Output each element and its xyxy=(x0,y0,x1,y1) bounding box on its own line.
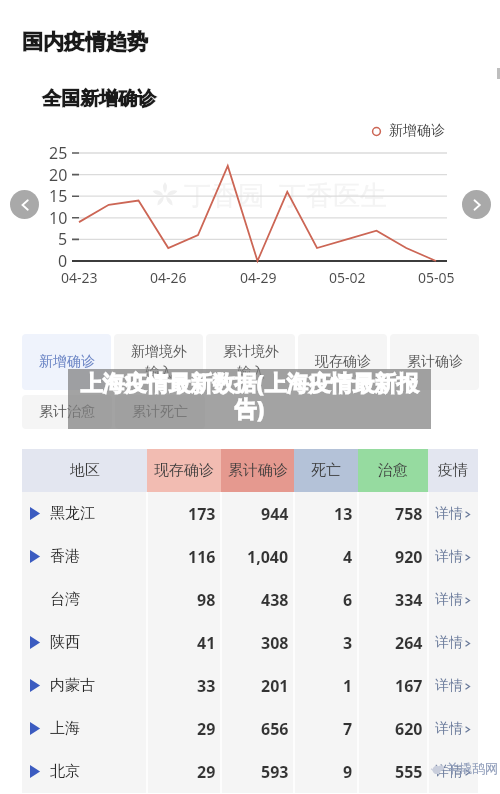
staticText: 593 xyxy=(261,761,289,783)
staticText: 疫情 xyxy=(438,461,468,480)
staticText: 920 xyxy=(395,546,423,568)
button[interactable]: 累计确诊 xyxy=(221,449,294,492)
staticText: 香港 xyxy=(50,547,80,566)
button[interactable]: 新增确诊 xyxy=(22,334,111,390)
staticText: 详情 xyxy=(435,763,463,781)
button[interactable]: 疫情 xyxy=(428,449,478,492)
staticText: 201 xyxy=(261,675,289,697)
staticText: 陕西 xyxy=(50,633,80,652)
staticText: 656 xyxy=(261,718,289,740)
staticText: 地区 xyxy=(70,461,100,480)
staticText: 25 xyxy=(49,142,68,164)
staticText: 555 xyxy=(395,761,423,783)
staticText: 05-02 xyxy=(329,268,366,287)
staticText: 334 xyxy=(395,589,423,611)
button[interactable]: 治愈 xyxy=(358,449,428,492)
staticText: 详情 xyxy=(435,634,463,652)
staticText: 台湾 xyxy=(50,590,80,609)
staticText: 治愈 xyxy=(378,461,408,480)
staticText: 4 xyxy=(343,546,353,568)
staticText: 3 xyxy=(343,632,353,654)
staticText: 04-26 xyxy=(150,268,187,287)
staticText: 详情 xyxy=(435,548,463,566)
button[interactable]: 内蒙古 xyxy=(22,664,478,707)
button[interactable]: 北京 xyxy=(22,750,478,793)
staticText: 10 xyxy=(49,207,68,229)
staticText: 累计境外 输入 xyxy=(223,343,279,381)
staticText: 全国新增确诊 xyxy=(42,87,156,111)
staticText: 7 xyxy=(343,718,353,740)
staticText: 05-05 xyxy=(418,268,455,287)
staticText: 308 xyxy=(261,632,289,654)
staticText: 944 xyxy=(261,503,289,525)
staticText: 438 xyxy=(261,589,289,611)
staticText: 黑龙江 xyxy=(50,504,95,523)
button[interactable]: 香港 xyxy=(22,535,478,578)
button[interactable]: 现存确诊 xyxy=(298,334,387,390)
staticText: 98 xyxy=(197,589,216,611)
staticText: 详情 xyxy=(435,591,463,609)
staticText: 累计治愈 xyxy=(39,403,95,421)
staticText: 上海 xyxy=(50,719,80,738)
staticText: 620 xyxy=(395,718,423,740)
staticText: 13 xyxy=(334,503,353,525)
button[interactable]: 累计境外 输入 xyxy=(206,334,295,390)
staticText: 04-23 xyxy=(61,268,98,287)
staticText: 04-29 xyxy=(240,268,277,287)
button[interactable]: 累计死亡 xyxy=(115,395,205,429)
button[interactable]: 累计治愈 xyxy=(22,395,112,429)
staticText: 新增确诊 xyxy=(389,122,445,140)
button[interactable]: 上海 xyxy=(22,707,478,750)
staticText: 死亡 xyxy=(311,461,341,480)
staticText: 累计确诊 xyxy=(407,353,463,371)
staticText: 264 xyxy=(395,632,423,654)
staticText: 现存确诊 xyxy=(154,461,214,480)
staticText: 详情 xyxy=(435,505,463,523)
staticText: 15 xyxy=(49,185,68,207)
button[interactable]: 黑龙江 xyxy=(22,492,478,535)
staticText: 9 xyxy=(343,761,353,783)
staticText: 现存确诊 xyxy=(315,353,371,371)
staticText: 758 xyxy=(395,503,423,525)
button[interactable]: 地区 xyxy=(22,449,147,492)
button[interactable]: 累计确诊 xyxy=(390,334,479,390)
button[interactable]: Next xyxy=(462,190,491,219)
staticText: 167 xyxy=(395,675,423,697)
staticText: 1 xyxy=(343,675,353,697)
staticText: 5 xyxy=(58,228,68,250)
staticText: 41 xyxy=(197,632,216,654)
button[interactable]: 现存确诊 xyxy=(147,449,221,492)
staticText: 详情 xyxy=(435,677,463,695)
staticText: 173 xyxy=(188,503,216,525)
staticText: 1,040 xyxy=(247,546,289,568)
staticText: 累计死亡 xyxy=(132,403,188,421)
staticText: 国内疫情趋势 xyxy=(22,29,148,55)
button[interactable]: Previous xyxy=(10,190,39,219)
staticText: 北京 xyxy=(50,762,80,781)
staticText: 20 xyxy=(49,164,68,186)
staticText: 内蒙古 xyxy=(50,676,95,695)
staticText: 0 xyxy=(58,250,68,272)
button[interactable]: 死亡 xyxy=(294,449,358,492)
button[interactable]: 台湾 xyxy=(22,578,478,621)
button[interactable]: 新增境外 输入 xyxy=(114,334,203,390)
staticText: 116 xyxy=(188,546,216,568)
staticText: 累计确诊 xyxy=(228,461,288,480)
staticText: 6 xyxy=(343,589,353,611)
staticText: 新增境外 输入 xyxy=(131,343,187,381)
staticText: 33 xyxy=(197,675,216,697)
button[interactable]: 陕西 xyxy=(22,621,478,664)
staticText: 上海疫情最新数据(上海疫情最新报告) xyxy=(76,367,423,424)
staticText: 新增确诊 xyxy=(39,353,95,371)
staticText: 详情 xyxy=(435,720,463,738)
staticText: 29 xyxy=(197,718,216,740)
staticText: 丁香园 丁香医生 xyxy=(184,176,388,213)
staticText: 29 xyxy=(197,761,216,783)
staticText: 羊撬鸹网 xyxy=(446,760,498,776)
